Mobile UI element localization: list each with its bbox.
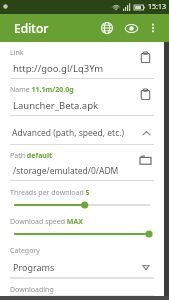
staticText: Path default bbox=[10, 151, 53, 161]
button[interactable]: Preview bbox=[119, 16, 143, 40]
staticText: Downloading bbox=[10, 285, 54, 295]
staticText: http://goo.gl/Lq3Ym bbox=[13, 62, 104, 75]
staticText: Editor bbox=[14, 20, 49, 36]
staticText: Advanced (path, speed, etc.) bbox=[12, 127, 138, 139]
button[interactable]: Paste bbox=[136, 48, 154, 66]
button[interactable]: Programs bbox=[10, 259, 154, 275]
button[interactable]: Choose folder bbox=[136, 151, 154, 169]
staticText: Threads per download 5 bbox=[10, 188, 90, 198]
button[interactable]: Threads slider bbox=[10, 198, 154, 212]
staticText: Launcher_Beta.apk bbox=[13, 99, 99, 112]
staticText: Name 11.1m/20.0g bbox=[10, 85, 74, 95]
staticText: Download speed MAX bbox=[10, 217, 83, 227]
staticText: 15:13 bbox=[148, 2, 166, 12]
staticText: Link bbox=[10, 48, 24, 58]
button[interactable]: Download speed slider bbox=[10, 227, 154, 241]
button[interactable]: Browser bbox=[95, 16, 119, 40]
staticText: Programs bbox=[13, 261, 138, 273]
button[interactable]: Paste bbox=[136, 85, 154, 103]
button[interactable]: More options bbox=[143, 18, 163, 38]
staticText: Category bbox=[10, 246, 40, 256]
button[interactable]: Advanced (path, speed, etc.) bbox=[10, 125, 154, 141]
staticText: /storage/emulated/0/ADM bbox=[13, 165, 119, 177]
